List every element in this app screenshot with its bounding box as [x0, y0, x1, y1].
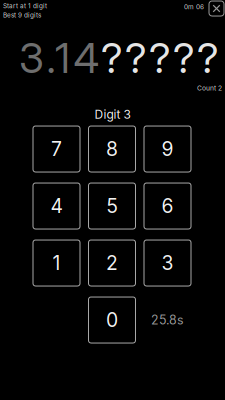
staticText: Best 9 digits — [3, 11, 41, 19]
button[interactable]: 1 — [33, 240, 80, 286]
staticText: 8 — [106, 137, 118, 161]
staticText: Start at 1 digit — [3, 2, 47, 10]
staticText: 5 — [106, 194, 117, 218]
button[interactable]: 2 — [88, 240, 135, 286]
staticText: Digit 3 — [94, 107, 130, 121]
staticText: 3.14 — [19, 33, 99, 83]
staticText: 4 — [50, 194, 62, 218]
staticText: 6 — [161, 194, 173, 218]
staticText: 1 — [52, 251, 60, 275]
staticText: 9 — [161, 137, 173, 161]
button[interactable]: Close — [209, 1, 224, 16]
button[interactable]: 0 — [88, 297, 135, 343]
button[interactable]: 5 — [88, 183, 135, 229]
button[interactable]: 3 — [144, 240, 191, 286]
staticText: 0 — [106, 308, 118, 332]
staticText: Count 2 — [197, 84, 222, 92]
staticText: 25.8s — [151, 312, 184, 327]
staticText: 2 — [106, 251, 118, 275]
button[interactable]: 7 — [33, 126, 80, 172]
button[interactable]: 4 — [33, 183, 80, 229]
button[interactable]: 8 — [88, 126, 135, 172]
staticText: 3 — [161, 251, 173, 275]
staticText: 7 — [51, 137, 62, 161]
button[interactable]: 9 — [144, 126, 191, 172]
staticText: ????? — [101, 33, 219, 83]
button[interactable]: 6 — [144, 183, 191, 229]
staticText: 0m 06 — [184, 3, 204, 11]
